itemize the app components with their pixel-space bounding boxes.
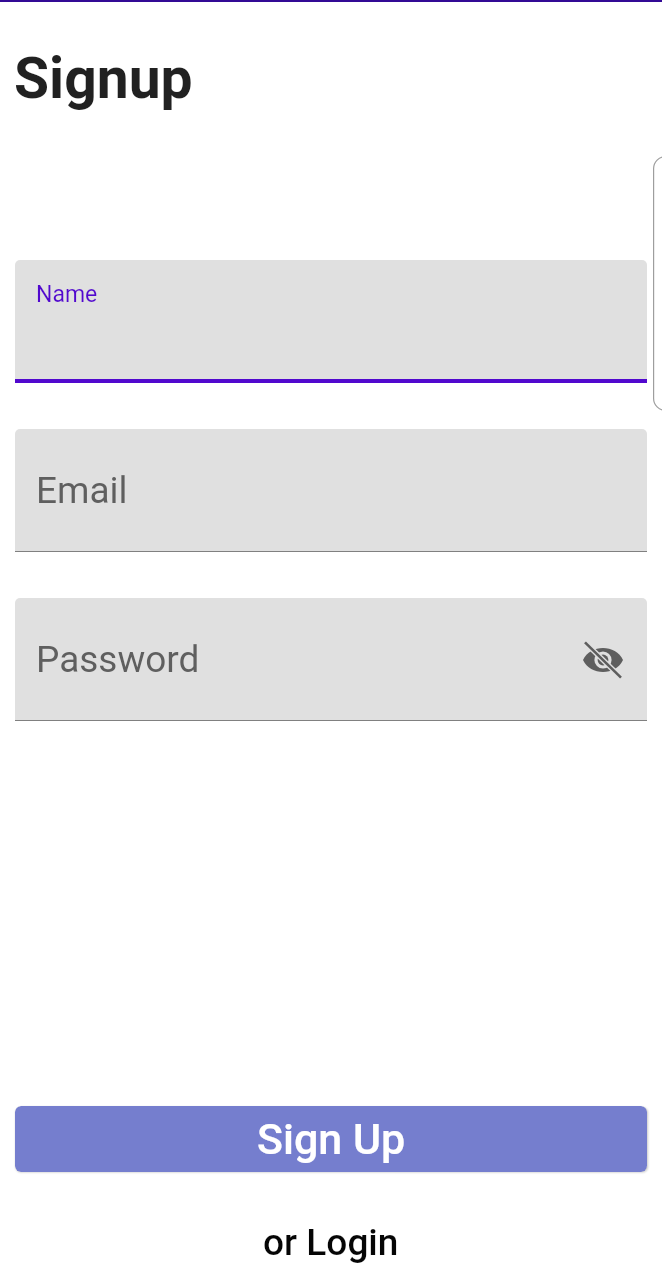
button[interactable]: Password	[15, 598, 647, 721]
staticText: Signup	[14, 45, 193, 112]
staticText: Password	[36, 638, 200, 681]
staticText: Email	[36, 469, 128, 512]
button[interactable]: Name	[15, 260, 647, 383]
staticText: Sign Up	[257, 1114, 406, 1164]
button[interactable]: Email	[15, 429, 647, 552]
staticText: Name	[36, 281, 98, 308]
button[interactable]: Sign Up	[15, 1106, 647, 1172]
button[interactable]: Show password	[579, 636, 627, 684]
button[interactable]: or Login	[263, 1221, 399, 1264]
